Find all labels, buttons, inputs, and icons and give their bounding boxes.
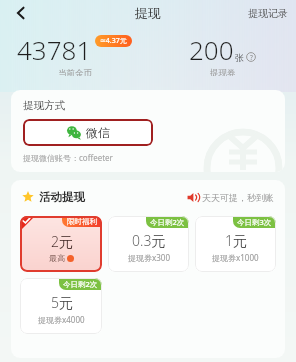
staticText: 活动提现	[39, 190, 85, 204]
button[interactable]: 微信	[23, 119, 153, 146]
staticText: 1元	[225, 231, 247, 250]
staticText: 今日剩2次	[63, 279, 98, 289]
button[interactable]: 2元	[20, 216, 102, 272]
staticText: 提现微信账号：coffeeter	[23, 152, 113, 163]
staticText: 2元	[51, 232, 73, 251]
staticText: ?	[250, 53, 253, 62]
staticText: 今日剩3次	[237, 217, 272, 227]
staticText: 微信	[86, 125, 110, 140]
button[interactable]: 0.3元	[108, 216, 189, 272]
staticText: 提现方式	[23, 99, 65, 112]
staticText: 提现券x300	[128, 252, 170, 263]
staticText: 43781	[17, 32, 92, 67]
staticText: 提现券x4000	[38, 314, 85, 325]
staticText: 今日剩2次	[150, 217, 185, 227]
button[interactable]: 1元	[195, 216, 276, 272]
staticText: 提现券	[210, 68, 236, 76]
staticText: ≈4.37元	[100, 36, 127, 46]
staticText: 200	[189, 32, 234, 67]
staticText: 提现	[135, 5, 161, 21]
staticText: 张	[235, 52, 244, 63]
staticText: 天天可提，秒到账	[202, 192, 274, 203]
staticText: 限时福利	[67, 217, 97, 226]
button[interactable]: 5元	[20, 278, 102, 334]
staticText: 0.3元	[132, 231, 166, 250]
staticText: 5元	[51, 293, 73, 312]
button[interactable]: 提现记录	[248, 7, 288, 20]
staticText: 最高	[49, 253, 65, 263]
staticText: 提现券x1000	[212, 252, 259, 263]
button[interactable]: Help	[246, 52, 256, 62]
staticText: 提现记录	[248, 7, 288, 20]
button[interactable]: Back	[6, 0, 36, 26]
staticText: 当前金币	[58, 68, 92, 76]
